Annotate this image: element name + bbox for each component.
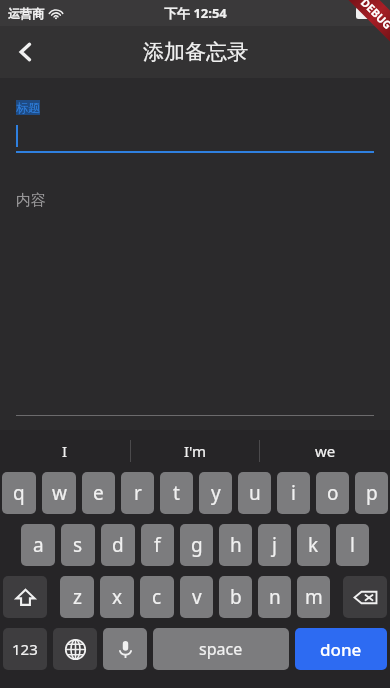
staticText: z: [73, 584, 82, 610]
staticText: s: [73, 532, 83, 558]
button[interactable]: we: [260, 430, 390, 472]
button[interactable]: b: [219, 576, 252, 618]
staticText: j: [272, 532, 277, 558]
staticText: space: [199, 638, 243, 660]
button[interactable]: d: [101, 524, 135, 566]
button[interactable]: o: [316, 472, 349, 514]
button[interactable]: q: [2, 472, 36, 514]
button[interactable]: u: [238, 472, 271, 514]
staticText: 内容: [16, 191, 46, 210]
staticText: i: [291, 480, 296, 506]
staticText: t: [173, 480, 180, 506]
staticText: q: [13, 480, 25, 506]
button[interactable]: Dictate: [103, 628, 147, 670]
button[interactable]: Next keyboard: [53, 628, 97, 670]
staticText: u: [249, 480, 261, 506]
staticText: 添加备忘录: [143, 39, 248, 65]
button[interactable]: x: [100, 576, 134, 618]
staticText: x: [112, 584, 123, 610]
staticText: f: [154, 532, 161, 558]
button[interactable]: Backspace: [343, 576, 387, 618]
button[interactable]: j: [258, 524, 291, 566]
button[interactable]: r: [121, 472, 154, 514]
staticText: DEBUG: [358, 0, 390, 32]
button[interactable]: e: [82, 472, 115, 514]
staticText: m: [305, 584, 323, 610]
button[interactable]: p: [355, 472, 388, 514]
button[interactable]: [16, 121, 374, 151]
button[interactable]: g: [180, 524, 213, 566]
button[interactable]: c: [140, 576, 174, 618]
button[interactable]: t: [160, 472, 193, 514]
button[interactable]: s: [61, 524, 95, 566]
staticText: g: [191, 532, 203, 558]
button[interactable]: v: [180, 576, 213, 618]
button[interactable]: y: [199, 472, 232, 514]
button[interactable]: space: [153, 628, 289, 670]
staticText: v: [192, 584, 202, 610]
button[interactable]: n: [258, 576, 291, 618]
staticText: r: [134, 480, 142, 506]
staticText: I'm: [184, 441, 207, 461]
staticText: we: [315, 441, 336, 461]
staticText: I: [62, 441, 68, 461]
staticText: 标题: [16, 100, 40, 115]
staticText: d: [112, 532, 124, 558]
staticText: done: [320, 638, 362, 661]
staticText: 运营商: [8, 6, 44, 21]
staticText: k: [308, 532, 319, 558]
button[interactable]: I: [0, 430, 130, 472]
staticText: l: [350, 532, 355, 558]
button[interactable]: I'm: [130, 430, 260, 472]
button[interactable]: a: [21, 524, 55, 566]
button[interactable]: 内容: [16, 191, 374, 210]
button[interactable]: m: [297, 576, 330, 618]
staticText: a: [33, 532, 44, 558]
staticText: n: [269, 584, 281, 610]
staticText: c: [152, 584, 162, 610]
button[interactable]: f: [141, 524, 174, 566]
button[interactable]: h: [219, 524, 252, 566]
staticText: e: [93, 480, 104, 506]
button[interactable]: k: [297, 524, 330, 566]
staticText: 123: [12, 639, 38, 659]
button[interactable]: 123: [3, 628, 47, 670]
button[interactable]: z: [60, 576, 94, 618]
button[interactable]: Back: [0, 26, 52, 78]
staticText: h: [230, 532, 242, 558]
button[interactable]: w: [42, 472, 76, 514]
button[interactable]: i: [277, 472, 310, 514]
staticText: 下午 12:54: [164, 4, 227, 22]
button[interactable]: l: [336, 524, 369, 566]
button[interactable]: done: [295, 628, 387, 670]
staticText: b: [230, 584, 242, 610]
button[interactable]: Shift: [3, 576, 47, 618]
staticText: w: [52, 480, 67, 506]
staticText: y: [211, 480, 221, 506]
staticText: o: [327, 480, 339, 506]
staticText: p: [366, 480, 378, 506]
